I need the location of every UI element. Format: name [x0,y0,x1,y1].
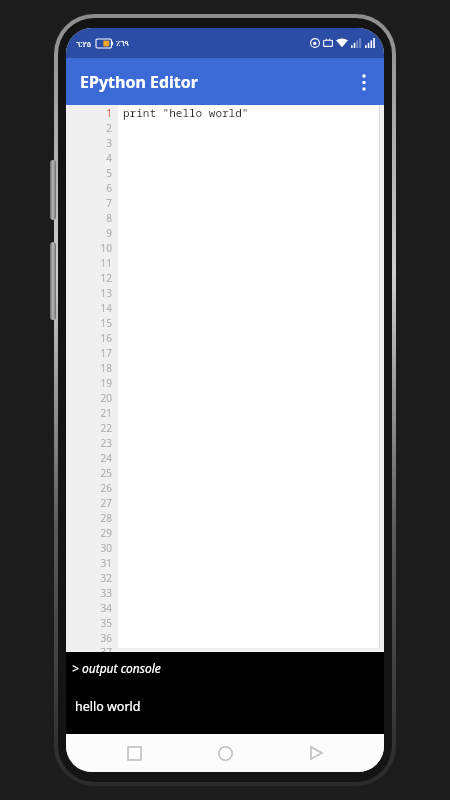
staticText: EPython Editor [80,71,198,93]
staticText: 10 [100,241,112,255]
staticText: 20 [100,391,112,405]
staticText: 29 [100,526,112,540]
staticText: 7 [106,196,112,210]
staticText: 31 [100,556,112,570]
staticText: 13 [100,286,112,300]
staticText: 24 [100,451,112,465]
staticText: 4 [106,151,112,165]
button[interactable]: More options [344,62,384,102]
staticText: print "hello world" [123,105,249,120]
staticText: 28 [100,511,112,525]
staticText: 5 [106,166,112,180]
staticText: 32 [100,571,112,585]
staticText: 27 [100,496,112,510]
staticText: ٦:٢٥ [76,38,92,49]
staticText: > output console [72,660,161,676]
staticText: 6 [106,181,112,195]
staticText: 35 [100,616,112,630]
button[interactable]: > output console [66,652,384,734]
staticText: 17 [100,346,112,360]
staticText: 8 [106,211,112,225]
staticText: 19 [100,376,112,390]
staticText: 34 [100,601,112,615]
staticText: hello world [75,698,141,715]
staticText: 26 [100,481,112,495]
button[interactable]: print "hello world" [118,105,380,648]
button[interactable]: Home [202,734,248,772]
staticText: 36 [100,631,112,645]
staticText: 23 [100,436,112,450]
staticText: 11 [100,256,112,270]
button[interactable]: Back [293,734,339,772]
staticText: 22 [100,421,112,435]
staticText: 1 [106,106,112,120]
staticText: 37 [100,645,112,652]
staticText: 21 [100,406,112,420]
staticText: 12 [100,271,112,285]
staticText: 9 [106,226,112,240]
staticText: 18 [100,361,112,375]
staticText: 25 [100,466,112,480]
staticText: 14 [100,301,112,315]
staticText: 3 [106,136,112,150]
staticText: 16 [100,331,112,345]
staticText: ٪٦٩ [116,39,129,48]
staticText: 33 [100,586,112,600]
staticText: 15 [100,316,112,330]
staticText: 30 [100,541,112,555]
button[interactable]: Recents [111,734,157,772]
staticText: 2 [106,121,112,135]
